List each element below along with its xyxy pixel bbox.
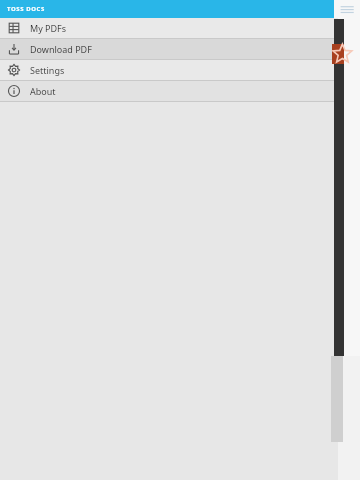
button[interactable]: Download PDF	[0, 39, 360, 59]
button[interactable]: My PDFs	[0, 18, 360, 38]
button[interactable]: About	[0, 81, 360, 101]
staticText: TOSS DOCS	[7, 5, 45, 13]
staticText: Settings	[30, 64, 65, 76]
staticText: About	[30, 85, 56, 97]
staticText: My PDFs	[30, 22, 67, 34]
button[interactable]: TOSS DOCS	[0, 0, 334, 18]
button[interactable]: Settings	[0, 60, 360, 80]
button[interactable]: Open navigation menu	[334, 0, 360, 18]
staticText: Download PDF	[30, 43, 92, 55]
button[interactable]: Favorite	[332, 44, 344, 64]
